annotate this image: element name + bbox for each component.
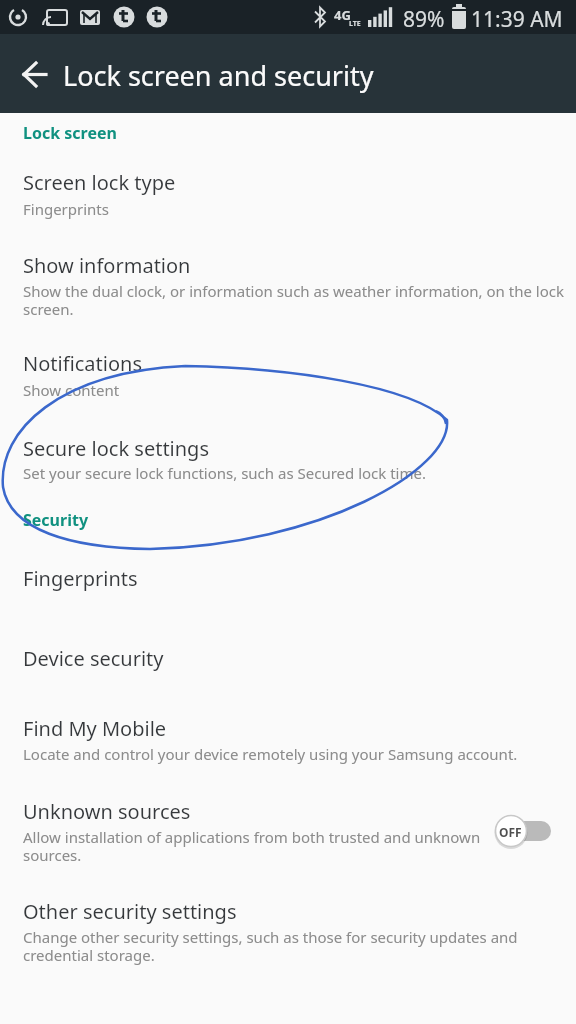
staticText: 4G — [334, 6, 351, 24]
staticText: Allow installation of applications from … — [23, 827, 481, 866]
staticText: Fingerprints — [23, 565, 138, 592]
staticText: Find My Mobile — [23, 715, 167, 742]
staticText: Show the dual clock, or information such… — [23, 281, 564, 320]
button[interactable]: Other security settings — [0, 883, 576, 977]
staticText: Show content — [23, 380, 120, 400]
button[interactable]: Screen lock type — [0, 152, 576, 232]
staticText: Locate and control your device remotely … — [23, 744, 518, 764]
staticText: Security — [23, 509, 89, 531]
staticText: Fingerprints — [23, 199, 109, 219]
button[interactable]: Show information — [0, 237, 576, 332]
staticText: 89% — [403, 5, 445, 34]
staticText: Lock screen and security — [63, 57, 374, 94]
staticText: Change other security settings, such as … — [23, 927, 518, 966]
button[interactable]: Secure lock settings — [0, 420, 576, 492]
staticText: Device security — [23, 645, 164, 672]
staticText: Lock screen — [23, 122, 117, 144]
staticText: LTE — [349, 19, 361, 29]
button[interactable]: Find My Mobile — [0, 700, 576, 776]
button[interactable]: Unknown sources — [0, 783, 576, 877]
button[interactable]: Notifications — [0, 335, 576, 410]
button[interactable]: Fingerprints — [0, 550, 576, 612]
staticText: Set your secure lock functions, such as … — [23, 463, 426, 483]
staticText: Other security settings — [23, 898, 237, 925]
staticText: Show information — [23, 252, 191, 279]
staticText: 11:39 AM — [471, 5, 563, 34]
staticText: Notifications — [23, 350, 142, 377]
button[interactable]: Device security — [0, 630, 576, 692]
staticText: Secure lock settings — [23, 435, 209, 462]
staticText: Screen lock type — [23, 169, 176, 196]
button[interactable] — [8, 48, 60, 100]
staticText: OFF — [499, 824, 522, 840]
staticText: Unknown sources — [23, 798, 191, 825]
